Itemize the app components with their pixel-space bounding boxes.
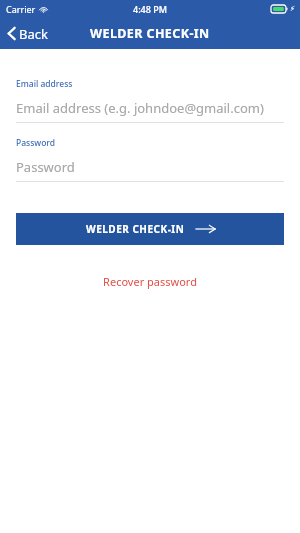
staticText: ⚡ — [290, 5, 295, 13]
staticText: WELDER CHECK-IN — [90, 25, 210, 42]
staticText: 4:48 PM — [133, 3, 167, 15]
staticText: Recover password — [103, 274, 197, 289]
staticText: Carrier — [6, 3, 36, 15]
button[interactable]: Email address (e.g. johndoe@gmail.com) — [0, 98, 300, 118]
button[interactable]: WELDER CHECK-IN — [16, 213, 284, 245]
button[interactable]: Password — [0, 157, 300, 177]
staticText: Email address (e.g. johndoe@gmail.com) — [16, 99, 264, 117]
button[interactable]: Recover password — [95, 272, 205, 291]
staticText: Password — [16, 158, 75, 176]
button[interactable]: Back — [0, 18, 56, 49]
staticText: Back — [19, 25, 48, 43]
staticText: WELDER CHECK-IN — [86, 222, 185, 236]
staticText: Password — [16, 137, 56, 149]
staticText: Email address — [16, 78, 73, 90]
